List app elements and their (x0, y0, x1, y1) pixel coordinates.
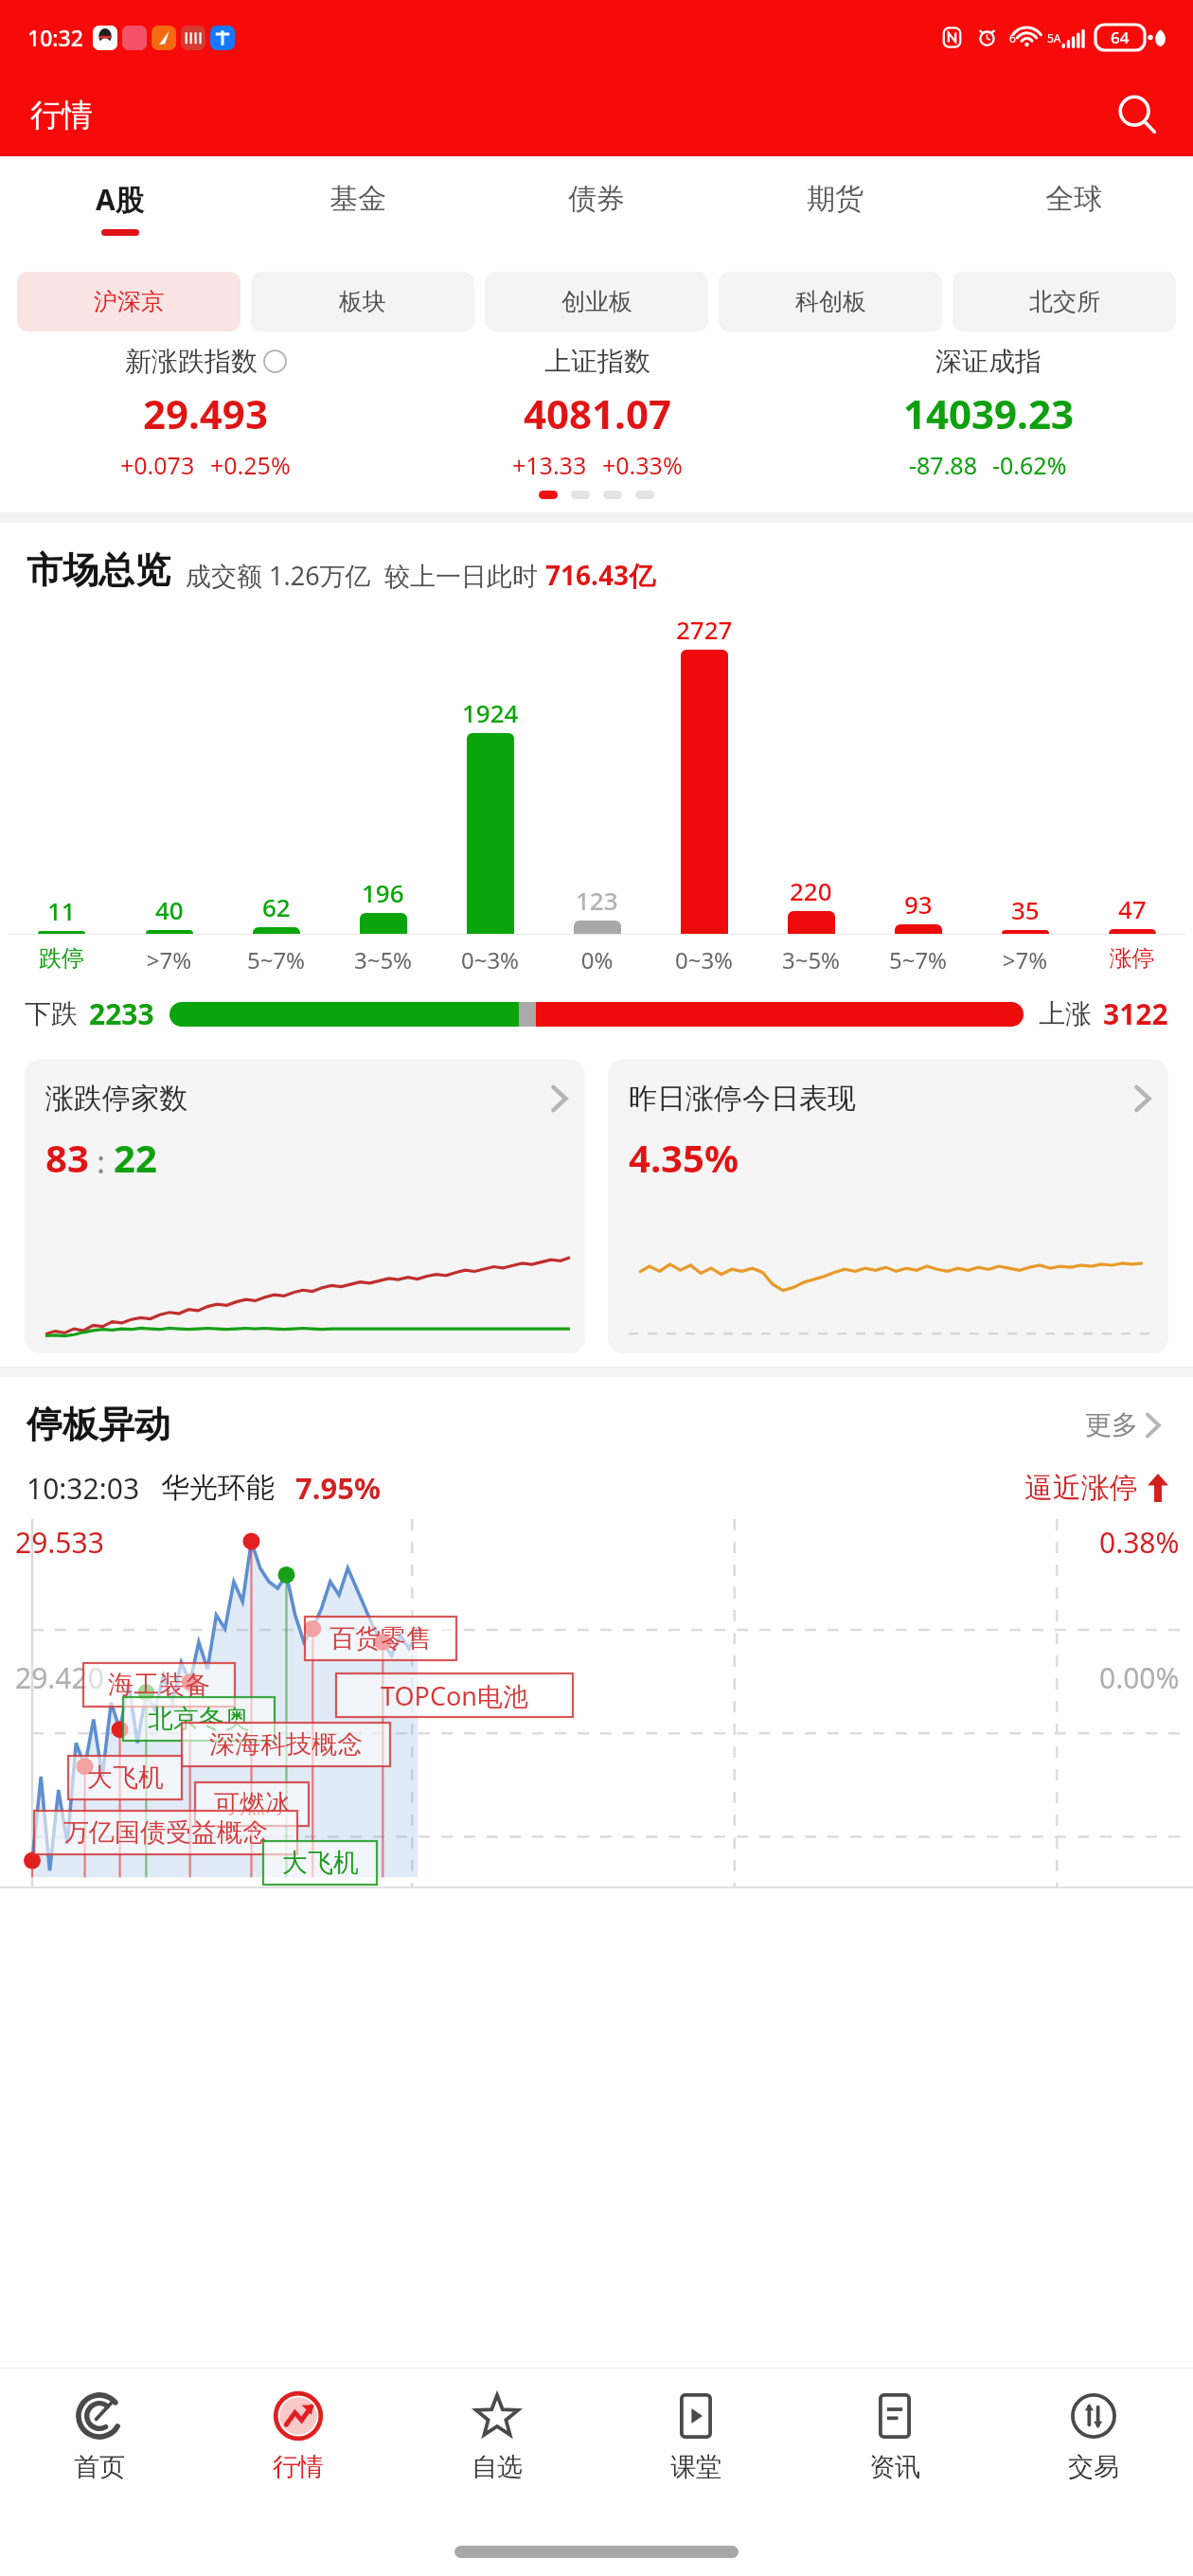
staticText: 3~5% (757, 944, 864, 975)
staticText: TOPCon电池 (381, 1678, 528, 1713)
staticText: 5A (1047, 30, 1061, 45)
staticText: 64 (1111, 27, 1130, 48)
staticText: 跌停 (8, 944, 116, 973)
button[interactable]: 债券 (477, 156, 716, 259)
button[interactable]: 涨跌停家数 (25, 1060, 585, 1353)
staticText: 35 (1011, 893, 1040, 926)
button[interactable]: 基金 (239, 156, 477, 259)
button[interactable]: 首页 (0, 2368, 199, 2527)
staticText: +0.073 (120, 449, 195, 481)
staticText: 行情 (30, 96, 93, 135)
staticText: 北交所 (1029, 287, 1100, 316)
staticText: 3~5% (329, 944, 436, 975)
button[interactable]: 全球 (954, 156, 1193, 259)
staticText: 期货 (807, 181, 864, 217)
button[interactable]: 期货 (716, 156, 954, 259)
button[interactable]: 沪深京 (17, 272, 240, 331)
staticText: 基金 (329, 181, 386, 217)
staticText: 29.533 (15, 1523, 104, 1562)
staticText: 大飞机 (87, 1762, 164, 1794)
button[interactable]: 自选 (398, 2368, 596, 2527)
staticText: >7% (971, 944, 1078, 975)
staticText: 5~7% (864, 944, 971, 975)
staticText: 万亿国债受益概念 (63, 1816, 268, 1849)
staticText: 0.38% (1099, 1523, 1180, 1562)
staticText: 创业板 (561, 287, 632, 316)
staticText: 行情 (273, 2451, 324, 2483)
staticText: 10:32 (27, 23, 83, 52)
staticText: 2233 (89, 994, 154, 1033)
staticText: 资讯 (869, 2451, 920, 2483)
staticText: 0% (543, 944, 650, 975)
staticText: 0~3% (436, 944, 543, 975)
staticText: 更多 (1085, 1408, 1138, 1441)
staticText: 债券 (568, 181, 625, 217)
staticText: 22 (114, 1132, 157, 1183)
button[interactable]: 上证指数 (401, 345, 792, 481)
staticText: 1924 (462, 696, 519, 729)
button[interactable]: 交易 (994, 2368, 1193, 2527)
button[interactable]: 10:32:03 (0, 1447, 1193, 1519)
staticText: 停板异动 (27, 1402, 170, 1447)
staticText: 220 (790, 874, 832, 907)
button[interactable]: 深证成指 (792, 345, 1184, 481)
staticText: 716.43亿 (545, 557, 655, 593)
button[interactable]: 行情 (199, 2368, 398, 2527)
staticText: 83 (45, 1132, 89, 1183)
button[interactable]: 创业板 (485, 272, 708, 331)
staticText: 全球 (1045, 181, 1102, 217)
staticText: 40 (155, 893, 184, 926)
button[interactable]: 北交所 (953, 272, 1176, 331)
staticText: 93 (904, 887, 933, 921)
staticText: 成交额 1.26万亿 (186, 558, 371, 593)
staticText: 6 (1009, 30, 1016, 45)
staticText: +13.33 (512, 449, 587, 481)
button[interactable]: 昨日涨停今日表现 (608, 1060, 1168, 1353)
button[interactable]: 新涨跌指数 (9, 345, 401, 481)
staticText: 百货零售 (329, 1622, 432, 1655)
button[interactable]: 板块 (251, 272, 474, 331)
staticText: 深证成指 (935, 345, 1042, 378)
staticText: 科创板 (795, 287, 866, 316)
staticText: -87.88 (909, 449, 977, 481)
staticText: 北京冬奥 (148, 1703, 250, 1735)
staticText: 自选 (472, 2451, 523, 2483)
staticText: 海工装备 (108, 1669, 210, 1701)
staticText: 新涨跌指数 (125, 345, 258, 378)
staticText: 196 (362, 876, 404, 909)
staticText: 沪深京 (94, 287, 165, 316)
staticText: 昨日涨停今日表现 (629, 1081, 856, 1117)
staticText: 大飞机 (282, 1847, 359, 1879)
staticText: 47 (1118, 892, 1147, 925)
button[interactable]: A股 (0, 156, 239, 259)
staticText: 下跌 (25, 997, 78, 1030)
staticText: 0~3% (650, 944, 757, 975)
staticText: 14039.23 (903, 386, 1074, 440)
staticText: 上证指数 (544, 345, 650, 378)
staticText: 上涨 (1039, 997, 1092, 1030)
staticText: -0.62% (992, 449, 1067, 481)
staticText: 华光环能 (161, 1470, 275, 1506)
staticText: 4081.07 (524, 386, 671, 440)
button[interactable]: 搜索 (1106, 84, 1168, 147)
staticText: 7.95% (295, 1468, 381, 1508)
staticText: 交易 (1068, 2451, 1119, 2483)
staticText: 较上一日此时 (384, 561, 538, 593)
staticText: +0.25% (210, 449, 291, 481)
staticText: 板块 (339, 287, 386, 316)
staticText: +0.33% (602, 449, 683, 481)
staticText: 深海科技概念 (209, 1728, 363, 1761)
staticText: 可燃冰 (214, 1788, 291, 1820)
button[interactable]: 更多 (1079, 1403, 1168, 1447)
staticText: 11 (47, 894, 76, 927)
staticText: 涨停 (1078, 944, 1185, 973)
staticText: 0.00% (1099, 1658, 1180, 1697)
staticText: 29.420 (15, 1658, 104, 1697)
button[interactable]: 资讯 (795, 2368, 994, 2527)
button[interactable]: 课堂 (596, 2368, 795, 2527)
staticText: 5~7% (223, 944, 329, 975)
staticText: 4.35% (629, 1132, 739, 1183)
button[interactable]: 科创板 (719, 272, 942, 331)
staticText: 课堂 (670, 2451, 721, 2483)
staticText: 10:32:03 (27, 1469, 140, 1508)
